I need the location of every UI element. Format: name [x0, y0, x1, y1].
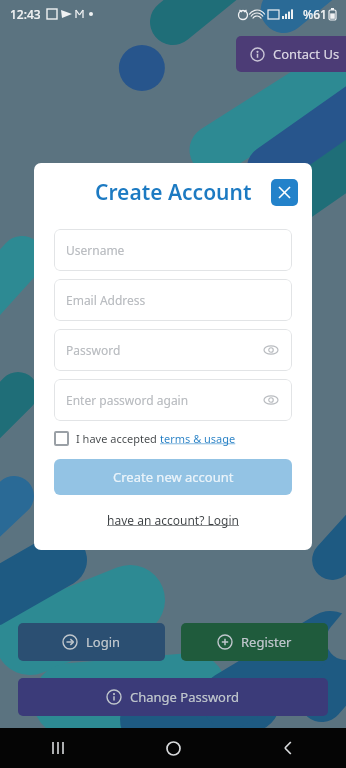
staticText: Login [86, 633, 121, 651]
button[interactable]: terms & usage [160, 431, 236, 446]
button[interactable]: Home [153, 728, 193, 768]
button[interactable]: Username [54, 229, 292, 271]
staticText: Contact Us [273, 45, 340, 63]
button[interactable]: Contact Us [236, 36, 346, 72]
staticText: 12:43 [10, 6, 41, 22]
staticText: Register [241, 633, 292, 651]
staticText: Change Password [130, 688, 240, 706]
button[interactable]: I have accepted [54, 431, 236, 446]
button[interactable]: Change Password [18, 678, 328, 716]
button[interactable]: Password [54, 329, 292, 371]
staticText: Email Address [66, 292, 146, 308]
button[interactable]: Email Address [54, 279, 292, 321]
button[interactable]: Enter password again [54, 379, 292, 421]
staticText: I have accepted [76, 431, 160, 446]
button[interactable]: Create new account [54, 459, 292, 495]
button[interactable]: Recents [38, 728, 78, 768]
staticText: Create Account [95, 178, 252, 207]
button[interactable]: Close [271, 179, 298, 206]
button[interactable]: Login [18, 623, 165, 661]
other: Show password [264, 393, 278, 407]
button[interactable]: Register [181, 623, 328, 661]
button[interactable]: have an account? Login [107, 512, 239, 528]
other: Show password [264, 343, 278, 357]
staticText: Create new account [113, 468, 234, 486]
staticText: Password [66, 342, 121, 358]
staticText: %61 [303, 6, 327, 22]
staticText: Username [66, 242, 125, 258]
button[interactable]: Back [268, 728, 308, 768]
staticText: Enter password again [66, 392, 189, 408]
